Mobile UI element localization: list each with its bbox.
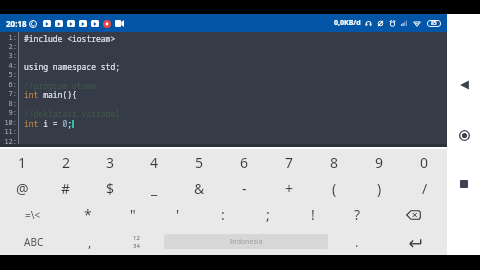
button[interactable]: : [200, 201, 245, 228]
button[interactable]: ! [290, 201, 335, 228]
staticText: 20:18 [6, 18, 27, 29]
staticText: 3: [0, 51, 17, 61]
button[interactable]: , [67, 228, 112, 255]
button[interactable]: 1 [0, 149, 44, 175]
button[interactable]: 2 [44, 149, 88, 175]
button[interactable]: 12 [112, 228, 160, 255]
staticText: 7 [285, 153, 294, 172]
staticText: : [221, 205, 225, 224]
staticText: #include <iostream> [24, 33, 116, 44]
button[interactable]: ( [312, 175, 357, 201]
staticText: ) [377, 179, 382, 198]
button[interactable]: 9 [357, 149, 402, 175]
staticText: int main(){ [24, 89, 77, 100]
staticText: 12 [133, 234, 140, 242]
button[interactable]: # [44, 175, 88, 201]
staticText: 5: [0, 70, 17, 80]
button[interactable]: =\< [0, 201, 65, 228]
button[interactable]: 0 [402, 149, 447, 175]
staticText: 8 [330, 153, 339, 172]
staticText: _ [151, 179, 158, 198]
button[interactable]: " [110, 201, 155, 228]
staticText: . [355, 233, 359, 251]
button[interactable]: Recent apps [451, 171, 477, 197]
staticText: 11: [0, 127, 17, 137]
button[interactable]: $ [88, 175, 132, 201]
staticText: ? [354, 205, 361, 224]
button[interactable]: @ [0, 175, 44, 201]
staticText: 4 [150, 153, 159, 172]
button[interactable]: - [222, 175, 267, 201]
staticText: int i = 0; [24, 118, 72, 129]
button[interactable]: ) [357, 175, 402, 201]
staticText: 3 [106, 153, 115, 172]
staticText: * [84, 205, 92, 224]
staticText: ( [332, 179, 337, 198]
button[interactable]: . [332, 228, 382, 255]
button[interactable]: Back [451, 72, 477, 98]
staticText: 1 [18, 153, 27, 172]
button[interactable]: ABC [0, 228, 67, 255]
staticText: & [194, 179, 205, 198]
staticText: / [422, 179, 428, 198]
button[interactable]: 4 [132, 149, 177, 175]
staticText: + [285, 179, 294, 198]
staticText: ; [266, 205, 270, 224]
staticText: ' [176, 205, 180, 224]
staticText: 6: [0, 80, 17, 90]
staticText: =\< [25, 208, 41, 222]
button[interactable]: 8 [312, 149, 357, 175]
staticText: 6 [240, 153, 249, 172]
staticText: 9 [375, 153, 384, 172]
staticText: 9: [0, 108, 17, 118]
button[interactable]: Home [451, 122, 477, 148]
staticText: //deklarasi variabel [24, 108, 120, 119]
button[interactable]: ; [245, 201, 290, 228]
staticText: //program utama [24, 80, 96, 91]
staticText: Indonesia [230, 237, 263, 247]
staticText: 4: [0, 61, 17, 71]
staticText: - [242, 179, 247, 198]
button[interactable]: _ [132, 175, 177, 201]
staticText: 1: [0, 33, 17, 43]
staticText: @ [16, 179, 29, 198]
button[interactable]: 3 [88, 149, 132, 175]
button[interactable]: Indonesia [164, 234, 328, 249]
button[interactable]: * [65, 201, 110, 228]
staticText: 0 [420, 153, 429, 172]
staticText: 2 [62, 153, 71, 172]
staticText: 0,0KB/d [334, 18, 361, 28]
staticText: 8: [0, 99, 17, 109]
button[interactable]: 6 [222, 149, 267, 175]
staticText: # [61, 179, 71, 198]
staticText: 5 [195, 153, 204, 172]
staticText: 34 [133, 242, 140, 250]
button[interactable]: + [267, 175, 312, 201]
staticText: ABC [24, 235, 44, 249]
button[interactable]: ? [335, 201, 380, 228]
staticText: 10: [0, 118, 17, 128]
staticText: " [130, 205, 136, 224]
button[interactable]: Backspace [380, 201, 447, 228]
button[interactable]: ' [155, 201, 200, 228]
button[interactable]: & [177, 175, 222, 201]
button[interactable]: / [402, 175, 447, 201]
button[interactable]: 5 [177, 149, 222, 175]
staticText: 2: [0, 42, 17, 52]
staticText: 7: [0, 89, 17, 99]
button[interactable]: Enter [382, 228, 447, 255]
button[interactable]: 7 [267, 149, 312, 175]
staticText: 85 [431, 20, 437, 27]
staticText: using namespace std; [24, 61, 120, 72]
staticText: 12: [0, 137, 17, 147]
staticText: $ [106, 179, 115, 198]
staticText: , [88, 233, 92, 251]
staticText: ! [311, 205, 315, 224]
